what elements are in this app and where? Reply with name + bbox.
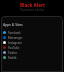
staticText: Messenger [8, 36, 23, 40]
staticText: Instagram [8, 41, 22, 45]
staticText: Distraction blocker [20, 8, 45, 12]
staticText: YouTube [8, 46, 20, 50]
staticText: Twitter [8, 51, 18, 55]
button[interactable]: YouTube [1, 45, 63, 50]
staticText: Reddit [8, 56, 17, 60]
button[interactable]: Messenger [1, 35, 63, 40]
button[interactable]: Reddit [1, 55, 63, 60]
staticText: Apps & Sites [3, 22, 23, 27]
button[interactable]: Instagram [1, 40, 63, 45]
staticText: Facebook [8, 31, 21, 35]
staticText: Black Alert [20, 2, 45, 7]
button[interactable]: Twitter [1, 50, 63, 55]
button[interactable]: Facebook [1, 30, 63, 35]
